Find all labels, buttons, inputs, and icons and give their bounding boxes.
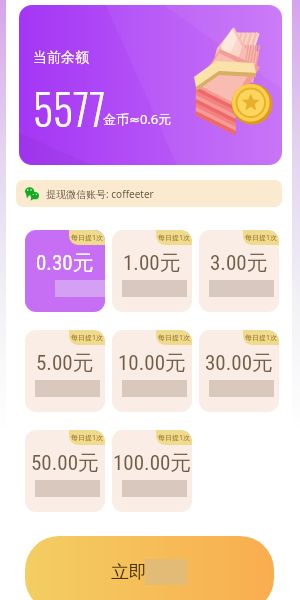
button[interactable]: 立即	[25, 536, 274, 600]
staticText: 每日提1次	[245, 333, 278, 343]
button[interactable]: 每日提1次	[112, 230, 192, 312]
staticText: 每日提1次	[71, 333, 104, 343]
staticText: 3.00元	[210, 250, 268, 276]
button[interactable]: 当前余额	[19, 5, 282, 165]
staticText: 金币≈0.6元	[103, 110, 172, 128]
staticText: 100.00元	[113, 450, 192, 476]
staticText: 每日提1次	[71, 233, 104, 243]
staticText: 1.00元	[123, 250, 181, 276]
staticText: 50.00元	[31, 450, 100, 476]
button[interactable]: 每日提1次	[25, 230, 105, 312]
staticText: 提现微信账号: coffeeter	[46, 187, 154, 201]
staticText: 每日提1次	[71, 433, 104, 443]
button[interactable]: 提现微信账号: coffeeter	[16, 180, 282, 207]
button[interactable]: 每日提1次	[199, 330, 279, 412]
staticText: 10.00元	[118, 350, 187, 376]
button[interactable]: 每日提1次	[112, 430, 192, 512]
button[interactable]: 每日提1次	[112, 330, 192, 412]
staticText: 每日提1次	[158, 433, 191, 443]
staticText: 立即	[111, 561, 147, 584]
staticText: 5577	[33, 77, 106, 139]
staticText: 当前余额	[33, 49, 89, 67]
button[interactable]: 每日提1次	[199, 230, 279, 312]
staticText: 每日提1次	[158, 233, 191, 243]
staticText: 每日提1次	[245, 233, 278, 243]
staticText: 30.00元	[205, 350, 274, 376]
staticText: 每日提1次	[158, 333, 191, 343]
button[interactable]: 每日提1次	[25, 330, 105, 412]
staticText: 0.30元	[36, 250, 94, 276]
staticText: 5.00元	[36, 350, 94, 376]
button[interactable]: 每日提1次	[25, 430, 105, 512]
